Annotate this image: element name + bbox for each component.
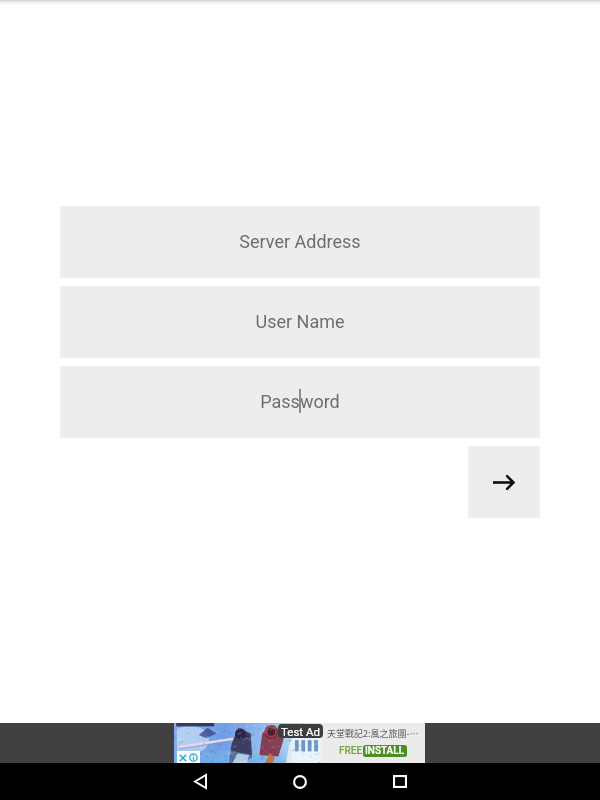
button[interactable]: Server Address [60, 206, 540, 278]
button[interactable]: Connect [468, 446, 540, 518]
button[interactable]: User Name [60, 286, 540, 358]
staticText: Test Ad [281, 725, 320, 738]
staticText: 天堂戰記2:風之旅團-… [327, 727, 419, 740]
button[interactable]: Recent apps [376, 763, 424, 800]
staticText: Password [260, 391, 340, 412]
staticText: FREE [339, 745, 363, 757]
staticText: INSTALL [365, 745, 405, 757]
button[interactable]: INSTALL [363, 745, 407, 757]
staticText: User Name [255, 311, 345, 332]
button[interactable]: Test Ad [174, 723, 425, 763]
button[interactable]: Home [276, 763, 324, 800]
button[interactable]: Ad info [177, 751, 200, 764]
button[interactable]: Password [60, 366, 540, 438]
staticText: Server Address [239, 231, 361, 252]
button[interactable]: Back [176, 763, 224, 800]
